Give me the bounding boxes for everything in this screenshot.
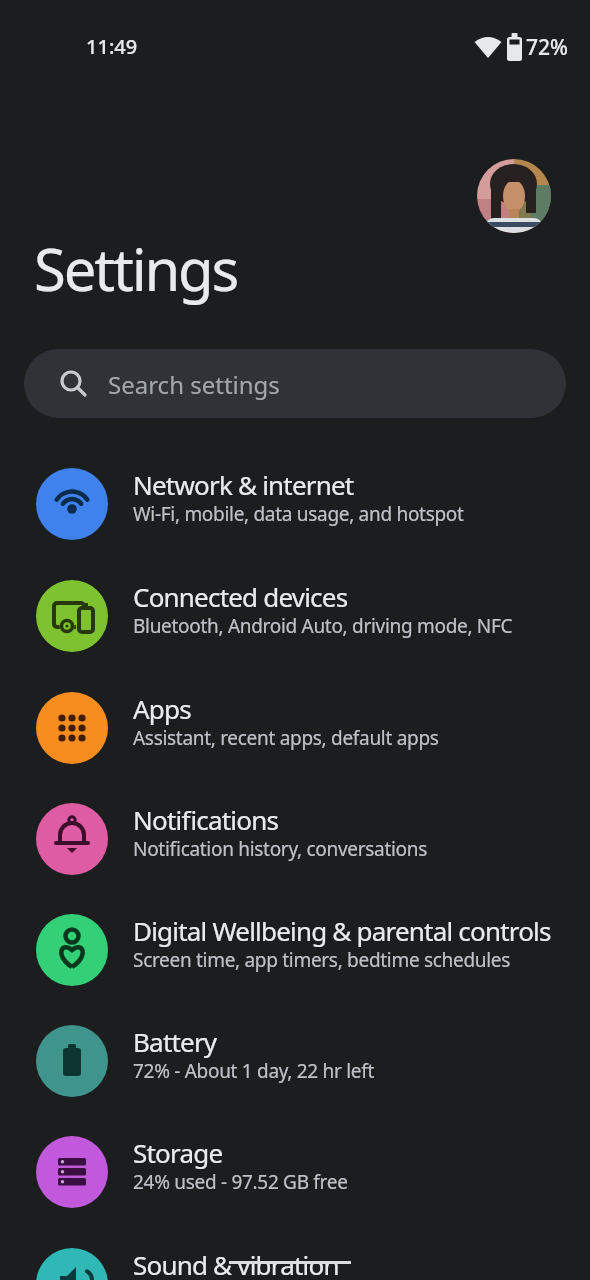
staticText: Settings <box>34 229 238 308</box>
staticText: Apps <box>133 691 191 726</box>
staticText: Bluetooth, Android Auto, driving mode, N… <box>133 613 513 639</box>
staticText: Screen time, app timers, bedtime schedul… <box>133 947 511 973</box>
staticText: 72% - About 1 day, 22 hr left <box>133 1058 375 1084</box>
button[interactable]: Notifications <box>0 783 590 895</box>
staticText: Storage <box>133 1135 223 1170</box>
button[interactable]: Search settings <box>24 349 566 418</box>
staticText: Search settings <box>108 368 280 401</box>
button[interactable]: Storage <box>0 1116 590 1228</box>
staticText: 24% used - 97.52 GB free <box>133 1169 348 1195</box>
button[interactable]: Network & internet <box>0 448 590 560</box>
staticText: Digital Wellbeing & parental controls <box>133 913 551 948</box>
staticText: Network & internet <box>133 467 354 502</box>
staticText: Assistant, recent apps, default apps <box>133 725 439 751</box>
button[interactable]: Connected devices <box>0 560 590 672</box>
staticText: 11:49 <box>86 33 138 60</box>
button[interactable]: Battery <box>0 1005 590 1117</box>
staticText: Wi-Fi, mobile, data usage, and hotspot <box>133 501 464 527</box>
staticText: Notifications <box>133 802 279 837</box>
staticText: Battery <box>133 1024 217 1059</box>
button[interactable]: Sound & vibration <box>0 1228 590 1280</box>
staticText: 72% <box>526 33 568 62</box>
button[interactable] <box>477 159 551 233</box>
button[interactable]: Apps <box>0 672 590 784</box>
staticText: Notification history, conversations <box>133 836 427 862</box>
staticText: Sound & vibration <box>133 1247 339 1280</box>
button[interactable]: Digital Wellbeing & parental controls <box>0 894 590 1006</box>
staticText: Connected devices <box>133 579 348 614</box>
